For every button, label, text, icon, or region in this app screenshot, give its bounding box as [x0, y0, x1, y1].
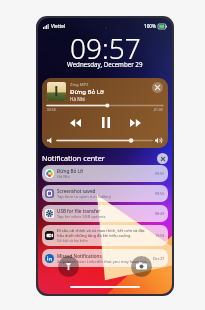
staticText: Notification center: [42, 153, 105, 163]
staticText: Đi sâu cải chính và sử mao thích, kết cơ…: [57, 228, 145, 233]
button[interactable]: Next track: [127, 114, 144, 131]
staticText: 2 updates from LinkedIn that you may hav…: [57, 259, 151, 264]
staticText: Viettel: [51, 23, 66, 29]
staticText: 09:56: [155, 171, 165, 176]
button[interactable]: Missed Notifications: [42, 249, 168, 267]
staticText: Hà Nhi: [57, 174, 70, 179]
button[interactable]: USB for file transfer: [42, 205, 168, 222]
staticText: 09:57: [70, 29, 141, 67]
staticText: Sôi bật và hai kiếm: [57, 238, 88, 243]
staticText: Screenshot saved: [57, 188, 96, 194]
staticText: 09:56: [155, 191, 165, 196]
button[interactable]: Previous track: [67, 114, 84, 131]
staticText: Zing MP3: [70, 82, 89, 88]
staticText: Đừng Bỏ Lỡ: [57, 168, 83, 174]
staticText: Tap here to open it in Gallery: [57, 194, 112, 199]
staticText: 19:58: [155, 233, 165, 238]
staticText: Đừng Bỏ Lỡ: [70, 88, 104, 96]
staticText: 08:49: [155, 211, 165, 216]
button[interactable]: Camera: [131, 256, 152, 277]
staticText: Dec 27: [153, 256, 165, 261]
staticText: 100%: [144, 23, 156, 29]
button[interactable]: Clear all notifications: [157, 153, 168, 164]
button[interactable]: Screenshot saved: [42, 185, 168, 202]
staticText: Tap for other USB options: [57, 214, 106, 219]
button[interactable]: Flashlight: [58, 256, 79, 277]
button[interactable]: Pause: [97, 114, 114, 131]
staticText: Hà Nhi: [70, 96, 85, 102]
staticText: USB for file transfer: [57, 208, 101, 214]
staticText: Wednesday, December 29: [67, 60, 143, 68]
staticText: 00:58: [47, 107, 56, 112]
button[interactable]: Đi sâu cải chính và sử mao thích, kết cơ…: [42, 225, 168, 246]
button[interactable]: Đừng Bỏ Lỡ: [42, 165, 168, 182]
staticText: Missed Notifications: [57, 253, 102, 259]
button[interactable]: Dismiss player: [152, 82, 163, 93]
staticText: -01:00: [153, 107, 163, 112]
staticText: hầu dưới những tầng đá khi triều xuống: [57, 233, 131, 238]
